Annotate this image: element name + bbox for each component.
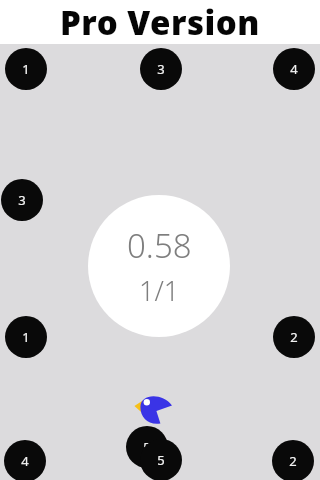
- button[interactable]: 2: [273, 316, 315, 358]
- staticText: 3: [157, 60, 165, 78]
- button[interactable]: Bird pointer: [134, 393, 174, 424]
- button[interactable]: 3: [1, 179, 43, 221]
- button[interactable]: 4: [4, 440, 46, 480]
- staticText: 5: [157, 451, 165, 469]
- staticText: 4: [21, 452, 29, 470]
- staticText: 4: [290, 60, 298, 78]
- staticText: 1: [22, 60, 30, 78]
- staticText: 5: [143, 438, 151, 456]
- button[interactable]: 1: [5, 316, 47, 358]
- staticText: 3: [18, 191, 26, 209]
- staticText: Pro Version: [60, 0, 260, 44]
- button[interactable]: 5: [126, 426, 168, 468]
- button[interactable]: 0.58: [88, 195, 230, 337]
- button[interactable]: 2: [272, 440, 314, 480]
- button[interactable]: 4: [273, 48, 315, 90]
- staticText: 0.58: [127, 223, 192, 268]
- staticText: 2: [289, 452, 297, 470]
- button[interactable]: 3: [140, 48, 182, 90]
- button[interactable]: 1: [5, 48, 47, 90]
- staticText: 1: [22, 328, 30, 346]
- staticText: 2: [290, 328, 298, 346]
- button[interactable]: 5: [140, 439, 182, 480]
- staticText: 1/1: [139, 272, 180, 309]
